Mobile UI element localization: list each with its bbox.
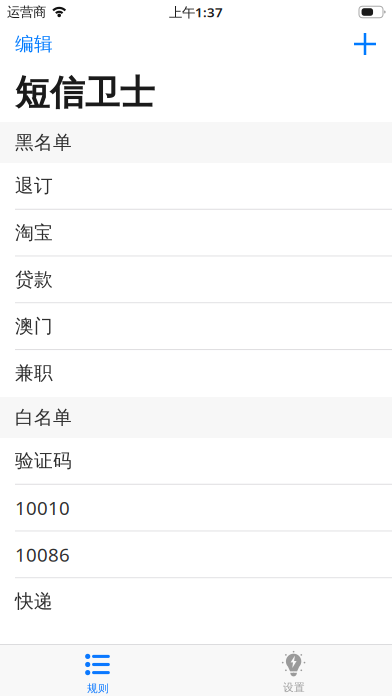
- button[interactable]: 退订: [0, 163, 392, 210]
- staticText: 黑名单: [15, 131, 72, 154]
- staticText: 短信卫士: [15, 72, 155, 114]
- staticText: 10086: [15, 542, 70, 567]
- button[interactable]: 验证码: [0, 438, 392, 485]
- staticText: 编辑: [15, 32, 53, 55]
- staticText: 快递: [15, 590, 53, 613]
- button[interactable]: 快递: [0, 578, 392, 625]
- staticText: 白名单: [15, 406, 72, 429]
- button[interactable]: 编辑: [0, 28, 67, 60]
- button[interactable]: 贷款: [0, 257, 392, 303]
- button[interactable]: 澳门: [0, 303, 392, 350]
- staticText: 淘宝: [15, 221, 53, 244]
- staticText: 规则: [87, 682, 109, 695]
- button[interactable]: 10010: [0, 485, 392, 532]
- button[interactable]: 10086: [0, 532, 392, 578]
- button[interactable]: 设置: [196, 645, 392, 696]
- staticText: 10010: [15, 495, 70, 520]
- staticText: 上午1:37: [169, 3, 223, 21]
- staticText: 澳门: [15, 315, 53, 338]
- staticText: 贷款: [15, 268, 53, 291]
- staticText: 退订: [15, 174, 53, 197]
- button[interactable]: 规则: [0, 645, 196, 696]
- button[interactable]: Add: [340, 28, 392, 60]
- button[interactable]: 兼职: [0, 350, 392, 397]
- staticText: 兼职: [15, 362, 53, 384]
- staticText: 运营商: [7, 4, 46, 20]
- staticText: 设置: [283, 681, 305, 694]
- staticText: 验证码: [15, 449, 72, 472]
- button[interactable]: 淘宝: [0, 210, 392, 257]
